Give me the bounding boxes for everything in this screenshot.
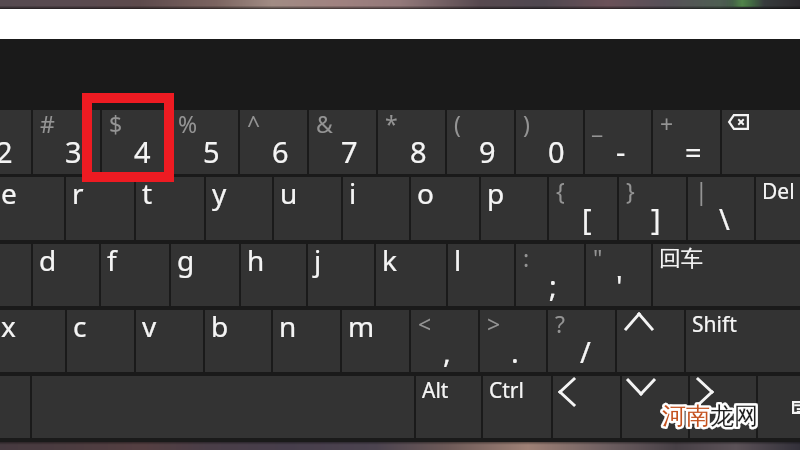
staticText: + <box>660 108 674 139</box>
staticText: 7 <box>341 132 358 171</box>
other: Switch input method <box>792 401 800 414</box>
staticText: j <box>314 241 322 279</box>
button[interactable]: Left <box>553 376 620 438</box>
staticText: 河南 <box>662 401 710 431</box>
staticText: Del <box>762 177 795 206</box>
staticText: x <box>1 307 16 345</box>
staticText: 龙网 <box>710 401 758 431</box>
button[interactable]: Shift <box>686 310 800 372</box>
staticText: r <box>72 174 84 212</box>
button[interactable]: o <box>411 177 479 240</box>
button[interactable]: e <box>0 177 64 240</box>
staticText: , <box>443 332 451 371</box>
button[interactable]: * <box>378 110 445 174</box>
button[interactable]: : <box>516 244 584 306</box>
staticText: 8 <box>410 132 427 171</box>
staticText: % <box>178 108 198 139</box>
button[interactable]: $ <box>102 110 169 174</box>
button[interactable]: Switch input method <box>758 376 800 438</box>
button[interactable]: " <box>586 244 651 306</box>
staticText: 2 <box>0 132 13 171</box>
button[interactable]: d <box>33 244 99 306</box>
staticText: Alt <box>422 376 449 405</box>
button[interactable]: Ctrl <box>483 376 551 438</box>
button[interactable]: t <box>136 177 204 240</box>
button[interactable]: 回车 <box>653 244 800 306</box>
staticText: ' <box>616 266 623 305</box>
button[interactable]: Del <box>756 177 800 240</box>
staticText: m <box>348 307 375 345</box>
button[interactable]: l <box>448 244 514 306</box>
button[interactable]: k <box>376 244 446 306</box>
staticText: 4 <box>134 132 151 171</box>
button[interactable]: < <box>411 310 478 372</box>
staticText: ^ <box>247 108 261 139</box>
button[interactable]: x <box>0 310 65 372</box>
staticText: g <box>177 241 195 279</box>
staticText: u <box>280 174 298 212</box>
staticText: _ <box>592 108 603 139</box>
staticText: i <box>349 174 357 212</box>
button[interactable]: c <box>67 310 134 372</box>
staticText: k <box>382 241 397 279</box>
staticText: 6 <box>272 132 289 171</box>
other: Right <box>697 378 713 406</box>
staticText: Ctrl <box>489 376 524 405</box>
staticText: ? <box>555 308 565 339</box>
button[interactable]: Backspace <box>722 110 800 174</box>
button[interactable]: + <box>653 110 720 174</box>
button[interactable]: # <box>33 110 100 174</box>
button[interactable]: % <box>171 110 238 174</box>
staticText: p <box>487 174 505 212</box>
button[interactable]: j <box>308 244 374 306</box>
button[interactable]: p <box>481 177 547 240</box>
button[interactable]: Right <box>690 376 756 438</box>
staticText: | <box>695 175 708 206</box>
button[interactable]: | <box>688 177 754 240</box>
staticText: * <box>385 108 398 139</box>
staticText: l <box>454 241 462 279</box>
staticText: ) <box>523 108 530 139</box>
staticText: ; <box>549 266 557 305</box>
button[interactable]: > <box>480 310 546 372</box>
button[interactable]: ( <box>447 110 514 174</box>
staticText: { <box>556 175 565 206</box>
staticText: Shift <box>692 310 737 339</box>
button[interactable]: @ <box>0 110 31 174</box>
button[interactable]: v <box>136 310 203 372</box>
button[interactable]: i <box>343 177 409 240</box>
staticText: 回车 <box>659 245 703 273</box>
button[interactable]: { <box>549 177 617 240</box>
staticText: d <box>39 241 57 279</box>
staticText: = <box>685 132 702 171</box>
staticText: 河南龙网 <box>662 401 758 431</box>
button[interactable]: ^ <box>240 110 307 174</box>
button[interactable]: g <box>171 244 239 306</box>
button[interactable]: f <box>101 244 169 306</box>
staticText: y <box>212 174 227 212</box>
button[interactable]: m <box>342 310 409 372</box>
button[interactable]: n <box>273 310 340 372</box>
button[interactable]: h <box>241 244 306 306</box>
button[interactable]: b <box>205 310 271 372</box>
button[interactable]: & <box>309 110 376 174</box>
button[interactable]: _ <box>585 110 651 174</box>
button[interactable]: Alt <box>416 376 481 438</box>
button[interactable]: Up <box>617 310 684 372</box>
button[interactable]: y <box>206 177 272 240</box>
staticText: o <box>417 174 434 212</box>
staticText: 9 <box>479 132 496 171</box>
staticText: # <box>40 108 55 139</box>
button[interactable]: ) <box>516 110 583 174</box>
staticText: b <box>211 307 229 345</box>
staticText: . <box>511 332 519 371</box>
button[interactable]: u <box>274 177 341 240</box>
button[interactable]: r <box>66 177 134 240</box>
staticText: 0 <box>548 132 565 171</box>
button[interactable]: ? <box>548 310 615 372</box>
button[interactable]: } <box>619 177 686 240</box>
button[interactable]: Down <box>622 376 688 438</box>
